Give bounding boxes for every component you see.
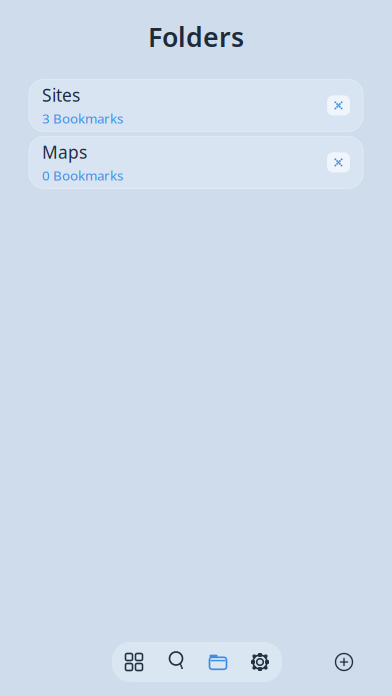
button[interactable]: All bookmarks (113, 642, 155, 682)
button[interactable]: Maps (29, 136, 363, 188)
staticText: 0 Bookmarks (42, 167, 123, 184)
staticText: Folders (148, 19, 244, 54)
staticText: 3 Bookmarks (42, 110, 123, 127)
button[interactable]: Add folder (324, 642, 364, 682)
button[interactable]: Folders (197, 642, 239, 682)
button[interactable]: Sites (29, 79, 363, 131)
button[interactable]: Search (155, 642, 197, 682)
staticText: Maps (42, 141, 87, 164)
button[interactable]: Settings (239, 642, 281, 682)
staticText: Sites (42, 84, 80, 107)
